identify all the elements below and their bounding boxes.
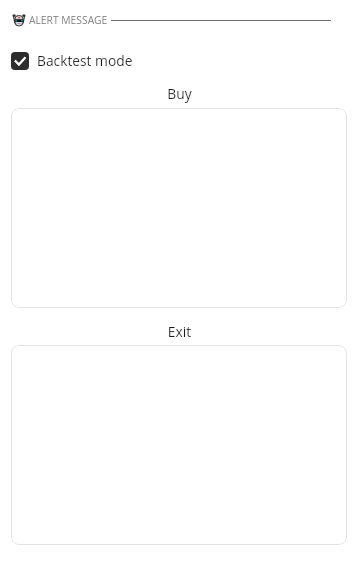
- button[interactable]: Buy alert message field: [11, 108, 347, 308]
- button[interactable]: Exit alert message field: [11, 345, 347, 545]
- staticText: Backtest mode: [37, 51, 133, 70]
- button[interactable]: Backtest mode: [11, 51, 139, 70]
- staticText: ALERT MESSAGE: [29, 13, 108, 27]
- staticText: Buy: [0, 84, 359, 103]
- staticText: Exit: [0, 322, 359, 341]
- other: Alert bot: [12, 13, 26, 27]
